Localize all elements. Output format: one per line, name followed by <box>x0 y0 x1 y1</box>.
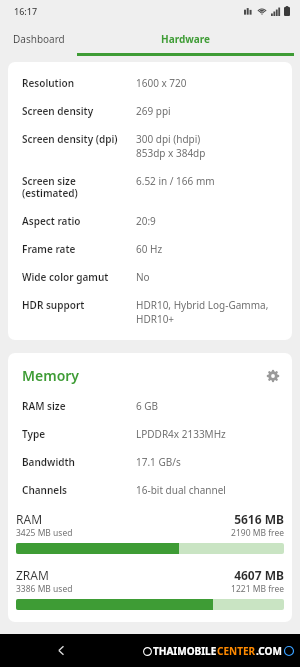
staticText: Screen density <box>22 104 136 118</box>
staticText: THAIMOBILE <box>153 644 217 658</box>
button[interactable]: Screen density <box>8 97 292 125</box>
staticText: RAM <box>16 511 234 527</box>
staticText: 2190 MB free <box>231 527 284 539</box>
staticText: 16-bit dual channel <box>136 483 226 497</box>
staticText: 1221 MB free <box>231 583 284 595</box>
staticText: Bandwidth <box>22 455 136 469</box>
staticText: ZRAM <box>16 567 234 583</box>
button[interactable]: ZRAM <box>8 567 292 610</box>
button[interactable]: Screen size (estimated) <box>8 167 292 207</box>
button[interactable]: Resolution <box>8 69 292 97</box>
button[interactable]: Bandwidth <box>8 448 292 476</box>
staticText: 20:9 <box>136 214 156 228</box>
staticText: LPDDR4x 2133MHz <box>136 427 226 441</box>
staticText: 17.1 GB/s <box>136 455 181 469</box>
staticText: 300 dpi (hdpi) <box>136 132 201 146</box>
button[interactable]: RAM <box>8 511 292 554</box>
staticText: Dashboard <box>13 32 65 46</box>
staticText: 5616 MB <box>234 511 284 527</box>
staticText: CENTER <box>217 644 256 658</box>
button[interactable]: RAM size <box>8 392 292 420</box>
staticText: 16:17 <box>14 5 38 17</box>
staticText: RAM size <box>22 399 136 413</box>
staticText: 4607 MB <box>234 567 284 583</box>
staticText: Frame rate <box>22 242 136 256</box>
button[interactable]: Hardware <box>71 22 300 56</box>
staticText: Aspect ratio <box>22 214 136 228</box>
staticText: Screen size (estimated) <box>22 174 136 200</box>
staticText: Type <box>22 427 136 441</box>
staticText: HDR10, Hybrid Log-Gamma, <box>136 298 269 312</box>
button[interactable]: Wide color gamut <box>8 263 292 291</box>
staticText: Memory <box>22 366 264 385</box>
staticText: 60 Hz <box>136 242 163 256</box>
staticText: 853dp x 384dp <box>136 146 206 160</box>
staticText: 1600 x 720 <box>136 76 187 90</box>
staticText: 3386 MB used <box>16 583 231 595</box>
staticText: HDR support <box>22 298 136 312</box>
button[interactable]: HDR support <box>8 291 292 333</box>
staticText: 6 GB <box>136 399 159 413</box>
staticText: .COM <box>256 644 282 658</box>
staticText: 269 ppi <box>136 104 171 118</box>
staticText: 3425 MB used <box>16 527 231 539</box>
button[interactable]: Memory settings <box>264 367 282 385</box>
staticText: HDR10+ <box>136 312 175 326</box>
staticText: Hardware <box>161 32 211 46</box>
button[interactable]: Aspect ratio <box>8 207 292 235</box>
staticText: Wide color gamut <box>22 270 136 284</box>
button[interactable]: Dashboard <box>7 22 71 53</box>
staticText: Screen density (dpi) <box>22 132 136 146</box>
staticText: 6.52 in / 166 mm <box>136 174 215 188</box>
button[interactable]: Back <box>50 639 73 662</box>
button[interactable]: Channels <box>8 476 292 504</box>
staticText: No <box>136 270 150 284</box>
button[interactable]: Type <box>8 420 292 448</box>
staticText: Resolution <box>22 76 136 90</box>
button[interactable]: Frame rate <box>8 235 292 263</box>
button[interactable]: Screen density (dpi) <box>8 125 292 167</box>
staticText: Channels <box>22 483 136 497</box>
